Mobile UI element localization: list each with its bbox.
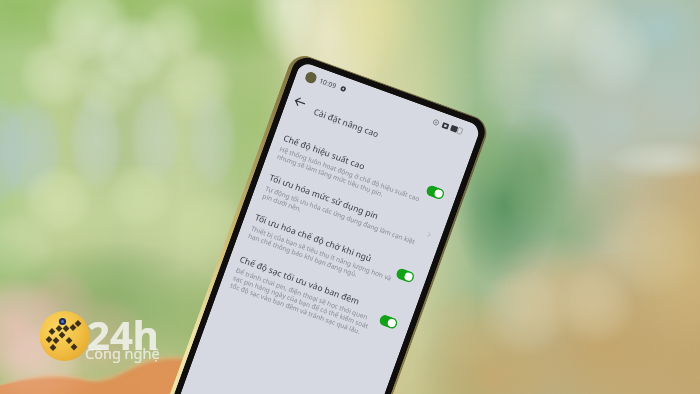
staticText: Công nghệ — [85, 343, 160, 363]
button[interactable]: Back — [291, 93, 309, 111]
staticText: Để tránh chai pin, điện thoại sẽ học thó… — [229, 266, 372, 338]
staticText: Cài đặt nâng cao — [312, 105, 381, 140]
button[interactable]: Toggle — [395, 267, 416, 284]
staticText: Chế độ hiệu suất cao — [282, 132, 367, 172]
staticText: Tự động tối ưu hóa các ứng dụng đang làm… — [261, 184, 416, 253]
staticText: 10:09 — [318, 76, 338, 90]
button[interactable]: Toggle — [378, 314, 399, 330]
button[interactable]: Chế độ sạc tối ưu vào ban đêm — [221, 245, 415, 348]
button[interactable]: Toggle — [425, 184, 446, 201]
staticText: Tối ưu hóa mức sử dụng pin — [268, 171, 380, 221]
staticText: Thiết bị của bạn sẽ tiêu thụ ít năng lượ… — [247, 224, 393, 290]
staticText: Tối ưu hóa chế độ chờ khi ngủ — [253, 211, 373, 264]
staticText: Chế độ sạc tối ưu vào ban đêm — [238, 253, 361, 307]
staticText: Hệ thống luôn hoạt động ở chế độ hiệu su… — [276, 144, 421, 210]
button[interactable]: Chế độ hiệu suất cao — [265, 124, 459, 227]
staticText: 24h — [87, 307, 159, 361]
button[interactable]: Tối ưu hóa mức sử dụng pin — [250, 163, 445, 266]
button[interactable]: Tối ưu hóa chế độ chờ khi ngủ — [236, 203, 430, 306]
